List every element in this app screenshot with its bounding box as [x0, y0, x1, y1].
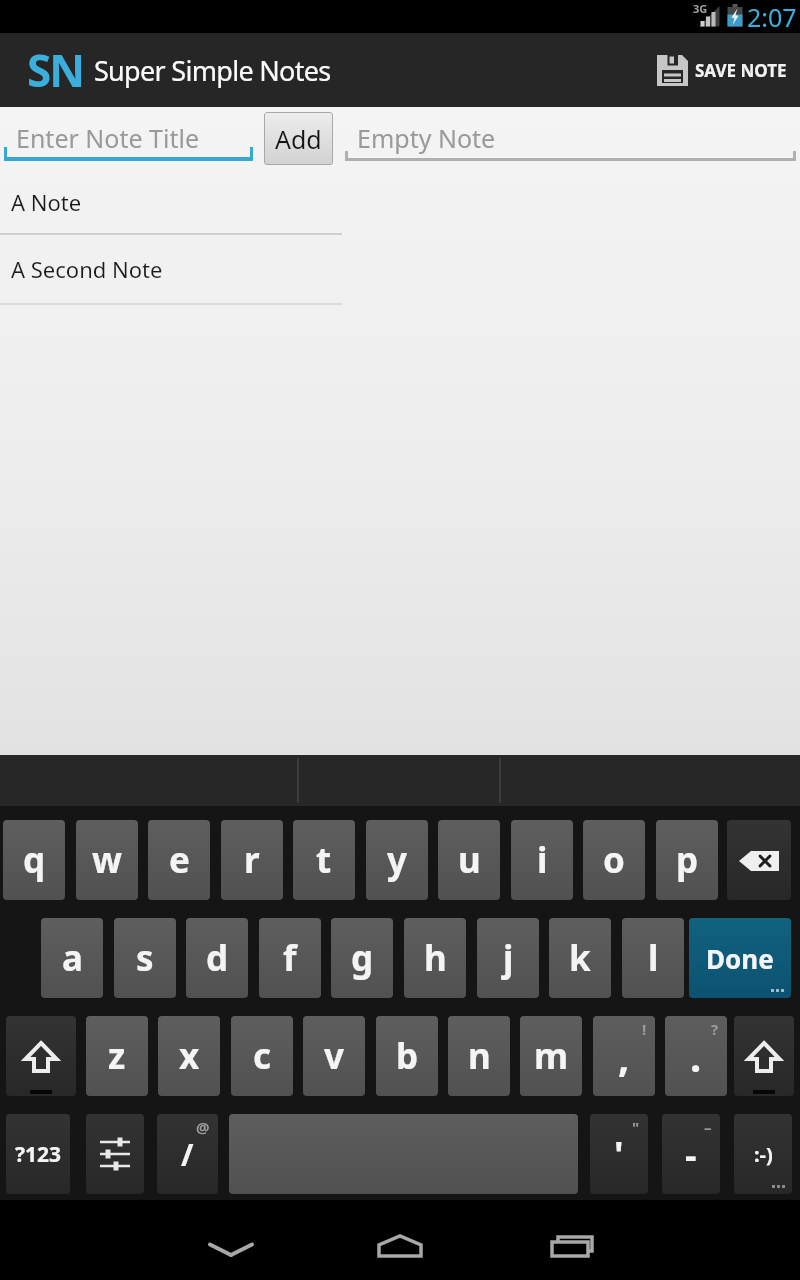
- staticText: –: [704, 1117, 712, 1137]
- button[interactable]: Done: [689, 918, 791, 998]
- button[interactable]: n: [448, 1016, 510, 1096]
- button[interactable]: ': [590, 1114, 648, 1194]
- button[interactable]: Enter Note Title: [4, 112, 253, 164]
- button[interactable]: e: [148, 820, 210, 900]
- staticText: SN: [27, 40, 84, 100]
- staticText: 3G: [693, 1, 708, 16]
- button[interactable]: j: [477, 918, 539, 998]
- button[interactable]: ?123: [6, 1114, 70, 1194]
- staticText: ?123: [15, 1140, 62, 1169]
- staticText: a: [62, 934, 83, 982]
- button[interactable]: p: [656, 820, 718, 900]
- staticText: u: [458, 836, 481, 884]
- staticText: Add: [275, 122, 322, 156]
- button[interactable]: k: [549, 918, 611, 998]
- staticText: i: [537, 836, 548, 884]
- staticText: m: [534, 1032, 569, 1080]
- staticText: j: [503, 934, 514, 982]
- staticText: !: [642, 1019, 647, 1039]
- button[interactable]: m: [520, 1016, 582, 1096]
- button[interactable]: i: [511, 820, 573, 900]
- staticText: A Second Note: [11, 254, 163, 284]
- button[interactable]: c: [231, 1016, 293, 1096]
- button[interactable]: l: [622, 918, 684, 998]
- staticText: t: [316, 836, 332, 884]
- button[interactable]: [6, 1016, 76, 1096]
- button[interactable]: /: [157, 1114, 218, 1194]
- button[interactable]: A Second Note: [0, 235, 342, 303]
- button[interactable]: [360, 1224, 440, 1268]
- button[interactable]: q: [3, 820, 65, 900]
- button[interactable]: A Note: [0, 170, 342, 233]
- staticText: Empty Note: [357, 121, 496, 155]
- staticText: e: [169, 836, 190, 884]
- button[interactable]: t: [293, 820, 355, 900]
- staticText: y: [387, 836, 407, 884]
- staticText: SAVE NOTE: [695, 59, 787, 82]
- staticText: o: [603, 836, 625, 884]
- button[interactable]: f: [259, 918, 321, 998]
- button[interactable]: [191, 1228, 271, 1272]
- staticText: /: [181, 1134, 194, 1175]
- staticText: v: [324, 1032, 344, 1080]
- staticText: z: [108, 1032, 126, 1080]
- staticText: h: [424, 934, 447, 982]
- staticText: r: [244, 836, 260, 884]
- button[interactable]: r: [221, 820, 283, 900]
- staticText: w: [92, 836, 122, 884]
- button[interactable]: o: [583, 820, 645, 900]
- staticText: p: [676, 836, 699, 884]
- staticText: ": [632, 1117, 640, 1137]
- button[interactable]: Empty Note: [345, 112, 795, 164]
- staticText: q: [23, 836, 46, 884]
- button[interactable]: z: [86, 1016, 148, 1096]
- staticText: .: [690, 1029, 702, 1083]
- button[interactable]: :-): [734, 1114, 792, 1194]
- staticText: @: [196, 1117, 210, 1137]
- staticText: Super Simple Notes: [94, 52, 331, 89]
- staticText: x: [179, 1032, 200, 1080]
- button[interactable]: [86, 1114, 144, 1194]
- staticText: -: [685, 1130, 697, 1179]
- button[interactable]: [532, 1224, 612, 1268]
- button[interactable]: Add: [264, 112, 333, 165]
- button[interactable]: d: [186, 918, 248, 998]
- button[interactable]: ,: [593, 1016, 655, 1096]
- staticText: c: [253, 1032, 272, 1080]
- staticText: k: [569, 934, 591, 982]
- staticText: ?: [711, 1019, 719, 1039]
- button[interactable]: [734, 1016, 794, 1096]
- button[interactable]: v: [303, 1016, 365, 1096]
- button[interactable]: w: [76, 820, 138, 900]
- button[interactable]: u: [438, 820, 500, 900]
- staticText: Enter Note Title: [16, 121, 199, 155]
- staticText: ': [614, 1130, 624, 1179]
- staticText: g: [351, 934, 374, 982]
- staticText: l: [648, 934, 659, 982]
- button[interactable]: y: [366, 820, 428, 900]
- staticText: A Note: [11, 187, 82, 217]
- button[interactable]: a: [41, 918, 103, 998]
- button[interactable]: g: [331, 918, 393, 998]
- button[interactable]: s: [114, 918, 176, 998]
- button[interactable]: [229, 1114, 578, 1194]
- button[interactable]: [727, 820, 791, 900]
- staticText: :-): [754, 1141, 773, 1168]
- staticText: ,: [618, 1029, 630, 1083]
- staticText: 2:07: [747, 0, 797, 33]
- button[interactable]: -: [662, 1114, 720, 1194]
- button[interactable]: x: [158, 1016, 220, 1096]
- staticText: Done: [706, 941, 774, 976]
- staticText: b: [396, 1032, 419, 1080]
- staticText: s: [136, 934, 154, 982]
- button[interactable]: h: [404, 918, 466, 998]
- button[interactable]: .: [665, 1016, 727, 1096]
- button[interactable]: b: [376, 1016, 438, 1096]
- staticText: d: [206, 934, 229, 982]
- staticText: f: [283, 934, 297, 982]
- staticText: n: [468, 1032, 491, 1080]
- button[interactable]: SAVE NOTE: [657, 55, 800, 86]
